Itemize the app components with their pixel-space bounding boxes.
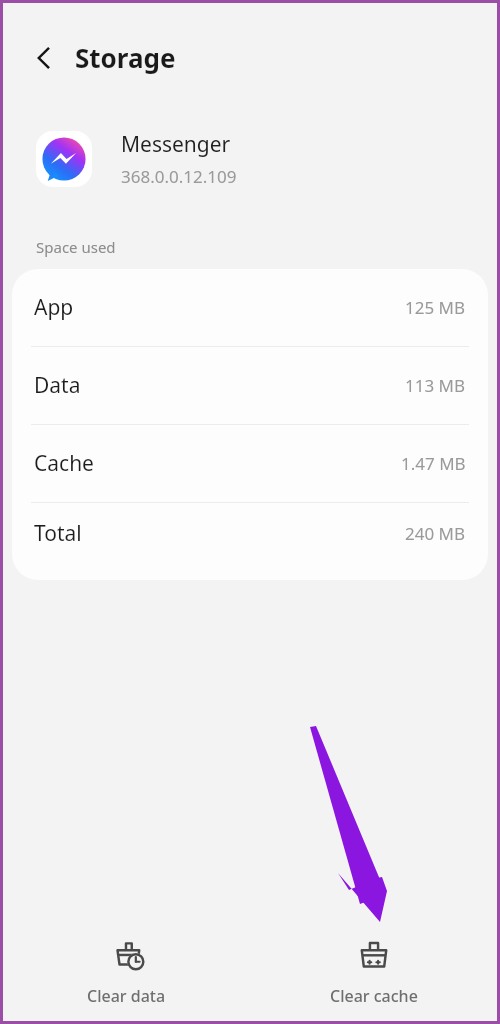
staticText: Messenger bbox=[121, 130, 231, 159]
staticText: 1.47 MB bbox=[401, 452, 466, 475]
button[interactable]: Clear cache bbox=[250, 925, 497, 1021]
staticText: 113 MB bbox=[405, 374, 466, 397]
staticText: Space used bbox=[36, 237, 116, 257]
staticText: 125 MB bbox=[405, 296, 466, 319]
button[interactable]: Data bbox=[12, 347, 488, 425]
other: Clear data bbox=[110, 940, 144, 974]
staticText: 240 MB bbox=[405, 522, 466, 545]
staticText: Clear cache bbox=[330, 985, 418, 1007]
staticText: App bbox=[34, 293, 74, 322]
staticText: Data bbox=[34, 371, 81, 400]
staticText: Clear data bbox=[87, 985, 166, 1007]
staticText: Total bbox=[34, 519, 82, 548]
button[interactable]: Clear data bbox=[3, 925, 250, 1021]
button[interactable]: Back bbox=[22, 36, 66, 80]
button[interactable]: Total bbox=[12, 503, 488, 563]
button[interactable]: Cache bbox=[12, 425, 488, 503]
button[interactable]: App bbox=[12, 269, 488, 347]
other: Clear cache bbox=[357, 940, 391, 974]
staticText: Storage bbox=[75, 40, 176, 75]
staticText: Cache bbox=[34, 449, 94, 478]
staticText: 368.0.0.12.109 bbox=[121, 165, 237, 188]
